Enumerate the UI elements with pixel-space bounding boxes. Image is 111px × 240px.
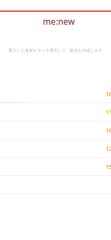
staticText: 128 <box>70 116 111 180</box>
staticText: 150 <box>70 135 111 198</box>
button[interactable]: きゅうり <box>0 121 111 139</box>
button[interactable]: 豚ロース肉一口かつ用 <box>0 103 111 121</box>
staticText: 118 <box>70 80 111 144</box>
staticText: ※価格は購入当時のもので、変わる場合があります <box>0 84 111 120</box>
button[interactable]: かぼちゃ <box>0 158 111 175</box>
staticText: 購入した食材をすべて選択して、献立を作成します <box>0 31 111 70</box>
button[interactable]: ピーマン <box>0 140 111 157</box>
staticText: 168 <box>70 62 111 126</box>
button[interactable]: 豚ロース肉切り落とし <box>0 85 111 103</box>
staticText: 79 <box>97 153 111 217</box>
staticText: 168 <box>70 98 111 162</box>
staticText: 5/21(月) オオゼキ 渋谷店 <box>0 27 111 84</box>
staticText: 豚ロース肉切り落とし <box>0 69 70 115</box>
staticText: me:new <box>0 0 111 67</box>
